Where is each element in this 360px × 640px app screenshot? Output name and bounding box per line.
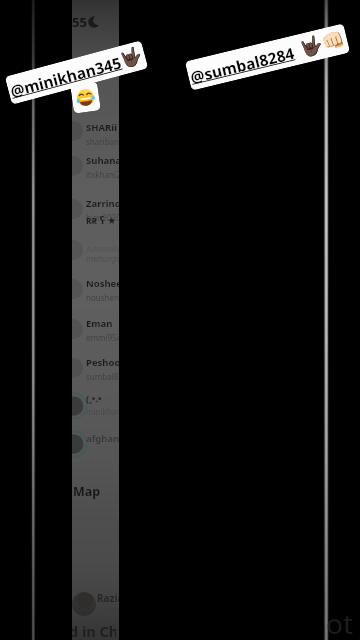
staticText: (˛•.•	[86, 392, 102, 405]
staticText: Razia	[97, 591, 119, 605]
staticText: sumbal8284	[86, 371, 119, 382]
staticText: itxkhani214	[86, 169, 119, 180]
staticText: ot	[326, 604, 354, 640]
button[interactable]: @sumbal8284	[185, 23, 350, 91]
button[interactable]: Laughing emoji sticker	[70, 81, 101, 114]
staticText: Map	[73, 483, 101, 500]
staticText: Aminah	[86, 243, 119, 255]
staticText: sharibanos	[86, 136, 119, 147]
staticText: Zarrinoo	[86, 197, 119, 210]
staticText: Eman	[86, 317, 113, 330]
button[interactable]: @minikhan345	[5, 40, 148, 105]
staticText: @minikhan345	[8, 51, 124, 101]
staticText: Peshoo	[86, 356, 119, 369]
staticText: emmi9546	[86, 332, 119, 343]
staticText: minikhan345	[86, 406, 119, 417]
staticText: Suhana	[86, 154, 119, 167]
staticText: afghan	[86, 432, 119, 445]
staticText: ʀʀ ʕ ★	[86, 213, 117, 227]
staticText: 🤟🏿	[117, 44, 145, 70]
staticText: SHARii	[86, 121, 117, 134]
staticText: noushen123	[86, 292, 119, 303]
staticText: 🤟🏿👊🏻	[297, 28, 347, 59]
staticText: 55	[72, 13, 87, 31]
button[interactable]: 55	[72, 0, 119, 640]
staticText: bjan2020	[86, 212, 119, 223]
staticText: mehurgul	[86, 253, 119, 264]
staticText: Nosheen	[86, 277, 119, 290]
staticText: @sumbal8284	[188, 42, 297, 87]
staticText: d in Chat	[72, 621, 116, 640]
